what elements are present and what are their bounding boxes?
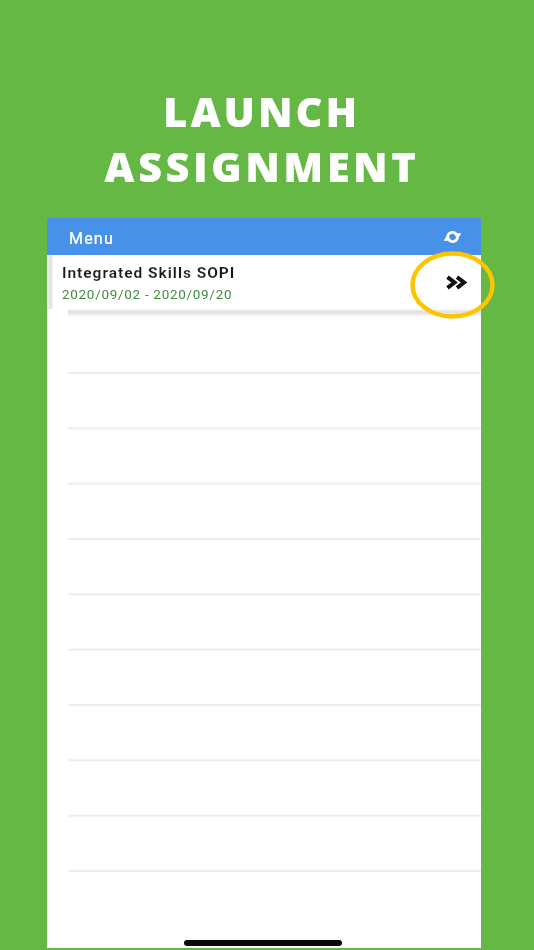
button[interactable]: Empty assignment slot: [47, 317, 481, 372]
button[interactable]: Refresh: [436, 221, 468, 253]
button[interactable]: Empty assignment slot: [47, 538, 481, 593]
button[interactable]: Open assignment: [441, 265, 475, 299]
button[interactable]: Integrated Skills SOPI: [47, 255, 481, 309]
staticText: LAUNCH: [0, 83, 529, 139]
button[interactable]: Empty assignment slot: [47, 704, 481, 759]
button[interactable]: Empty assignment slot: [47, 372, 481, 427]
staticText: 2020/09/02 - 2020/09/20: [62, 286, 233, 302]
staticText: Integrated Skills SOPI: [62, 264, 236, 282]
staticText: ASSIGNMENT: [0, 138, 529, 194]
staticText: Menu: [69, 229, 114, 248]
button[interactable]: Empty assignment slot: [47, 870, 481, 925]
